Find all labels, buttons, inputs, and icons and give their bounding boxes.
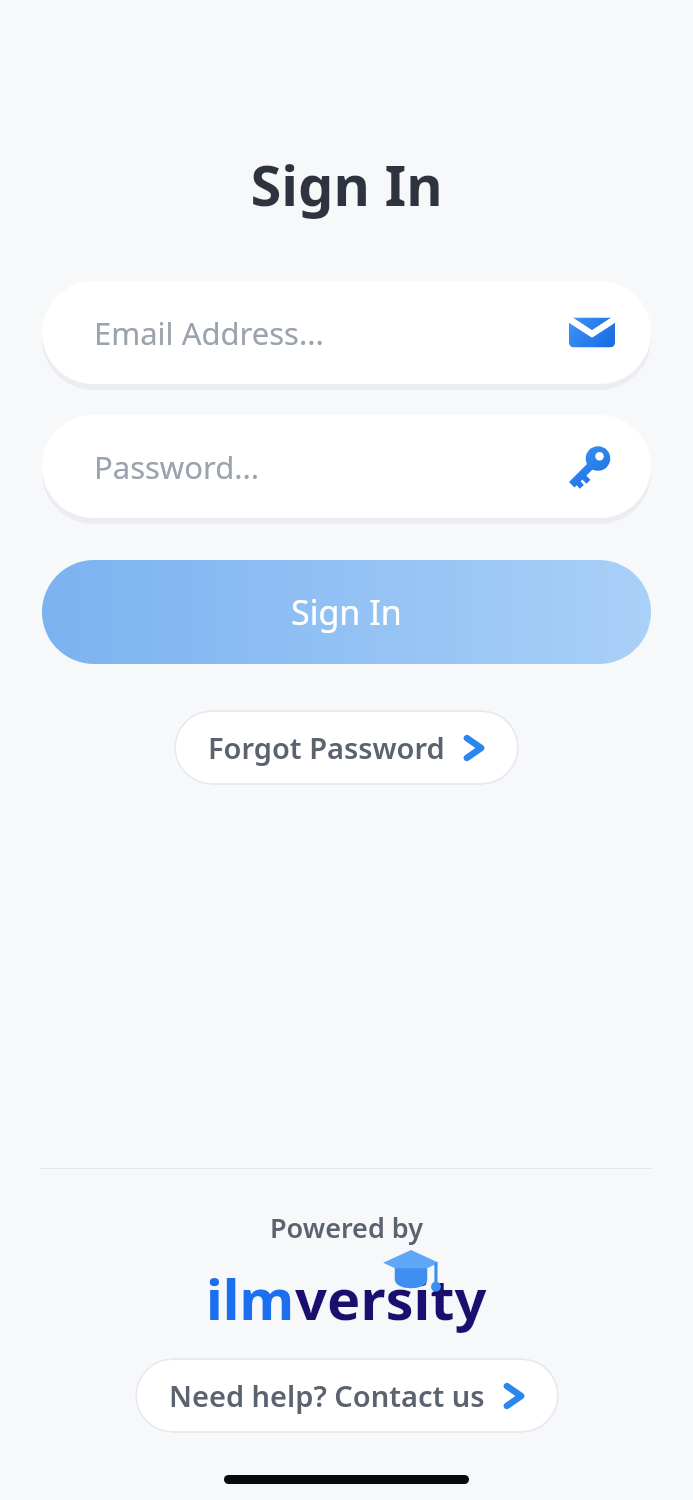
other: Email: [569, 310, 615, 356]
button[interactable]: Sign In: [42, 560, 651, 664]
button[interactable]: Need help? Contact us: [135, 1358, 559, 1433]
staticText: Forgot Password: [208, 728, 445, 767]
staticText: Need help? Contact us: [169, 1376, 485, 1415]
button[interactable]: Password...: [42, 415, 651, 518]
staticText: Password...: [94, 446, 260, 488]
staticText: versity: [295, 1260, 487, 1336]
button[interactable]: Email Address...: [42, 281, 651, 384]
staticText: Email Address...: [94, 312, 324, 354]
staticText: Sign In: [291, 589, 402, 635]
staticText: Powered by: [270, 1209, 423, 1246]
button[interactable]: Forgot Password: [174, 710, 519, 785]
staticText: Sign In: [250, 146, 443, 222]
staticText: ilm: [206, 1260, 295, 1336]
other: Password: [565, 442, 615, 492]
